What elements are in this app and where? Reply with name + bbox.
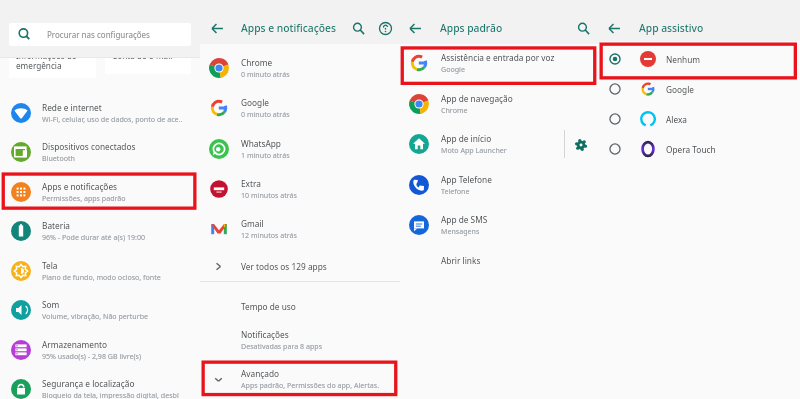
staticText: Procurar nas configurações bbox=[47, 29, 150, 40]
button[interactable]: Avançado bbox=[200, 361, 400, 397]
button[interactable]: Tempo de uso bbox=[200, 292, 400, 320]
staticText: Desativadas para 8 apps bbox=[241, 341, 323, 351]
button[interactable]: Armazenamento bbox=[0, 330, 200, 369]
button[interactable]: Help bbox=[374, 17, 397, 40]
button[interactable]: App de SMS bbox=[400, 205, 600, 245]
button[interactable]: Back bbox=[404, 17, 427, 40]
staticText: Informações de bbox=[16, 50, 77, 61]
staticText: Plano de fundo, modo ocioso, fonte bbox=[42, 272, 161, 282]
staticText: Google bbox=[241, 97, 270, 108]
staticText: Tela bbox=[42, 260, 58, 271]
staticText: 96% - Pode durar até a(s) 19:00 bbox=[42, 232, 146, 242]
staticText: Tempo de uso bbox=[241, 301, 296, 312]
staticText: Dispositivos conectados bbox=[42, 141, 136, 152]
button[interactable]: Procurar nas configurações bbox=[9, 23, 191, 46]
button[interactable]: Extra bbox=[200, 170, 400, 208]
button[interactable]: Rede e internet bbox=[0, 93, 200, 132]
button[interactable]: Chrome bbox=[200, 49, 400, 87]
button[interactable]: Notificações bbox=[200, 324, 400, 356]
staticText: Armazenamento bbox=[42, 339, 108, 350]
staticText: Chrome bbox=[441, 105, 468, 115]
staticText: emergência bbox=[16, 60, 62, 71]
staticText: Apps e notificações bbox=[241, 21, 336, 35]
staticText: Bluetooth bbox=[42, 153, 75, 163]
button[interactable]: WhatsApp bbox=[200, 130, 400, 168]
staticText: WhatsApp bbox=[241, 138, 281, 149]
staticText: 12 minutos atrás bbox=[241, 230, 297, 240]
button[interactable]: Search bbox=[572, 17, 595, 40]
staticText: Apps padrão, Permissões do app, Alertas. bbox=[241, 380, 380, 390]
staticText: Gmail bbox=[241, 218, 264, 229]
staticText: Mensagens bbox=[441, 226, 480, 236]
staticText: Rede e internet bbox=[42, 102, 102, 113]
button[interactable]: App de início bbox=[400, 124, 600, 164]
staticText: 10 minutos atrás bbox=[241, 190, 297, 200]
button[interactable]: Google bbox=[600, 74, 800, 104]
button[interactable]: Nenhum bbox=[600, 44, 800, 74]
button[interactable]: Dispositivos conectados bbox=[0, 132, 200, 171]
button[interactable]: Gmail bbox=[200, 210, 400, 248]
button[interactable]: Tela bbox=[0, 251, 200, 290]
staticText: Extra bbox=[241, 178, 261, 189]
staticText: Google bbox=[441, 64, 465, 74]
staticText: Som bbox=[42, 299, 60, 310]
staticText: Moto App Launcher bbox=[441, 145, 507, 155]
staticText: Chrome bbox=[241, 57, 273, 68]
button[interactable]: Search bbox=[347, 17, 370, 40]
button[interactable]: Alexa bbox=[600, 104, 800, 134]
staticText: Volume, vibração, Não perturbe bbox=[42, 311, 149, 321]
staticText: Ver todos os 129 apps bbox=[241, 261, 327, 272]
staticText: App de início bbox=[441, 133, 492, 144]
staticText: Conta de e-mail bbox=[112, 50, 173, 61]
button[interactable]: Segurança e localização bbox=[0, 369, 200, 399]
staticText: 95% usado(s) - 2,98 GB livre(s) bbox=[42, 351, 142, 361]
staticText: Segurança e localização bbox=[42, 378, 135, 389]
button[interactable]: Opera Touch bbox=[600, 134, 800, 164]
staticText: Alexa bbox=[666, 114, 687, 125]
staticText: 1 minuto atrás bbox=[241, 150, 290, 160]
staticText: Bateria bbox=[42, 220, 70, 231]
button[interactable]: Conta de e-mail bbox=[105, 30, 191, 74]
staticText: Notificações bbox=[241, 329, 289, 340]
button[interactable]: Bateria bbox=[0, 211, 200, 250]
staticText: Nenhum bbox=[666, 54, 701, 65]
staticText: Opera Touch bbox=[666, 144, 716, 155]
staticText: App de SMS bbox=[441, 214, 488, 225]
staticText: Permissões, apps padrão bbox=[42, 193, 126, 203]
button[interactable]: Assistência e entrada por voz bbox=[400, 43, 600, 83]
staticText: Abrir links bbox=[441, 255, 481, 266]
button[interactable]: Som bbox=[0, 290, 200, 329]
staticText: Bloqueio da tela, impressão digital, des… bbox=[42, 390, 179, 399]
staticText: Telefone bbox=[441, 186, 470, 196]
button[interactable]: Informações de bbox=[9, 30, 96, 78]
button[interactable]: Ver todos os 129 apps bbox=[200, 248, 400, 284]
button[interactable]: Google bbox=[200, 89, 400, 127]
staticText: App assistivo bbox=[639, 21, 704, 35]
staticText: App de navegação bbox=[441, 93, 513, 104]
button[interactable]: Back bbox=[603, 17, 626, 40]
staticText: Avançado bbox=[241, 368, 280, 379]
button[interactable]: Apps e notificações bbox=[0, 172, 200, 211]
button[interactable]: Back bbox=[206, 17, 229, 40]
staticText: 0 minuto atrás bbox=[241, 69, 290, 79]
staticText: Apps padrão bbox=[440, 21, 503, 35]
button[interactable]: Abrir links bbox=[400, 245, 600, 275]
staticText: App Telefone bbox=[441, 174, 492, 185]
button[interactable]: App de navegação bbox=[400, 84, 600, 124]
staticText: Apps e notificações bbox=[42, 181, 118, 192]
button[interactable]: Settings bbox=[570, 134, 591, 155]
button[interactable]: App Telefone bbox=[400, 165, 600, 205]
staticText: 0 minuto atrás bbox=[241, 109, 290, 119]
staticText: Wi-Fi, celular, uso de dados, ponto de a… bbox=[42, 114, 183, 124]
staticText: Google bbox=[666, 84, 695, 95]
staticText: Assistência e entrada por voz bbox=[441, 52, 555, 63]
